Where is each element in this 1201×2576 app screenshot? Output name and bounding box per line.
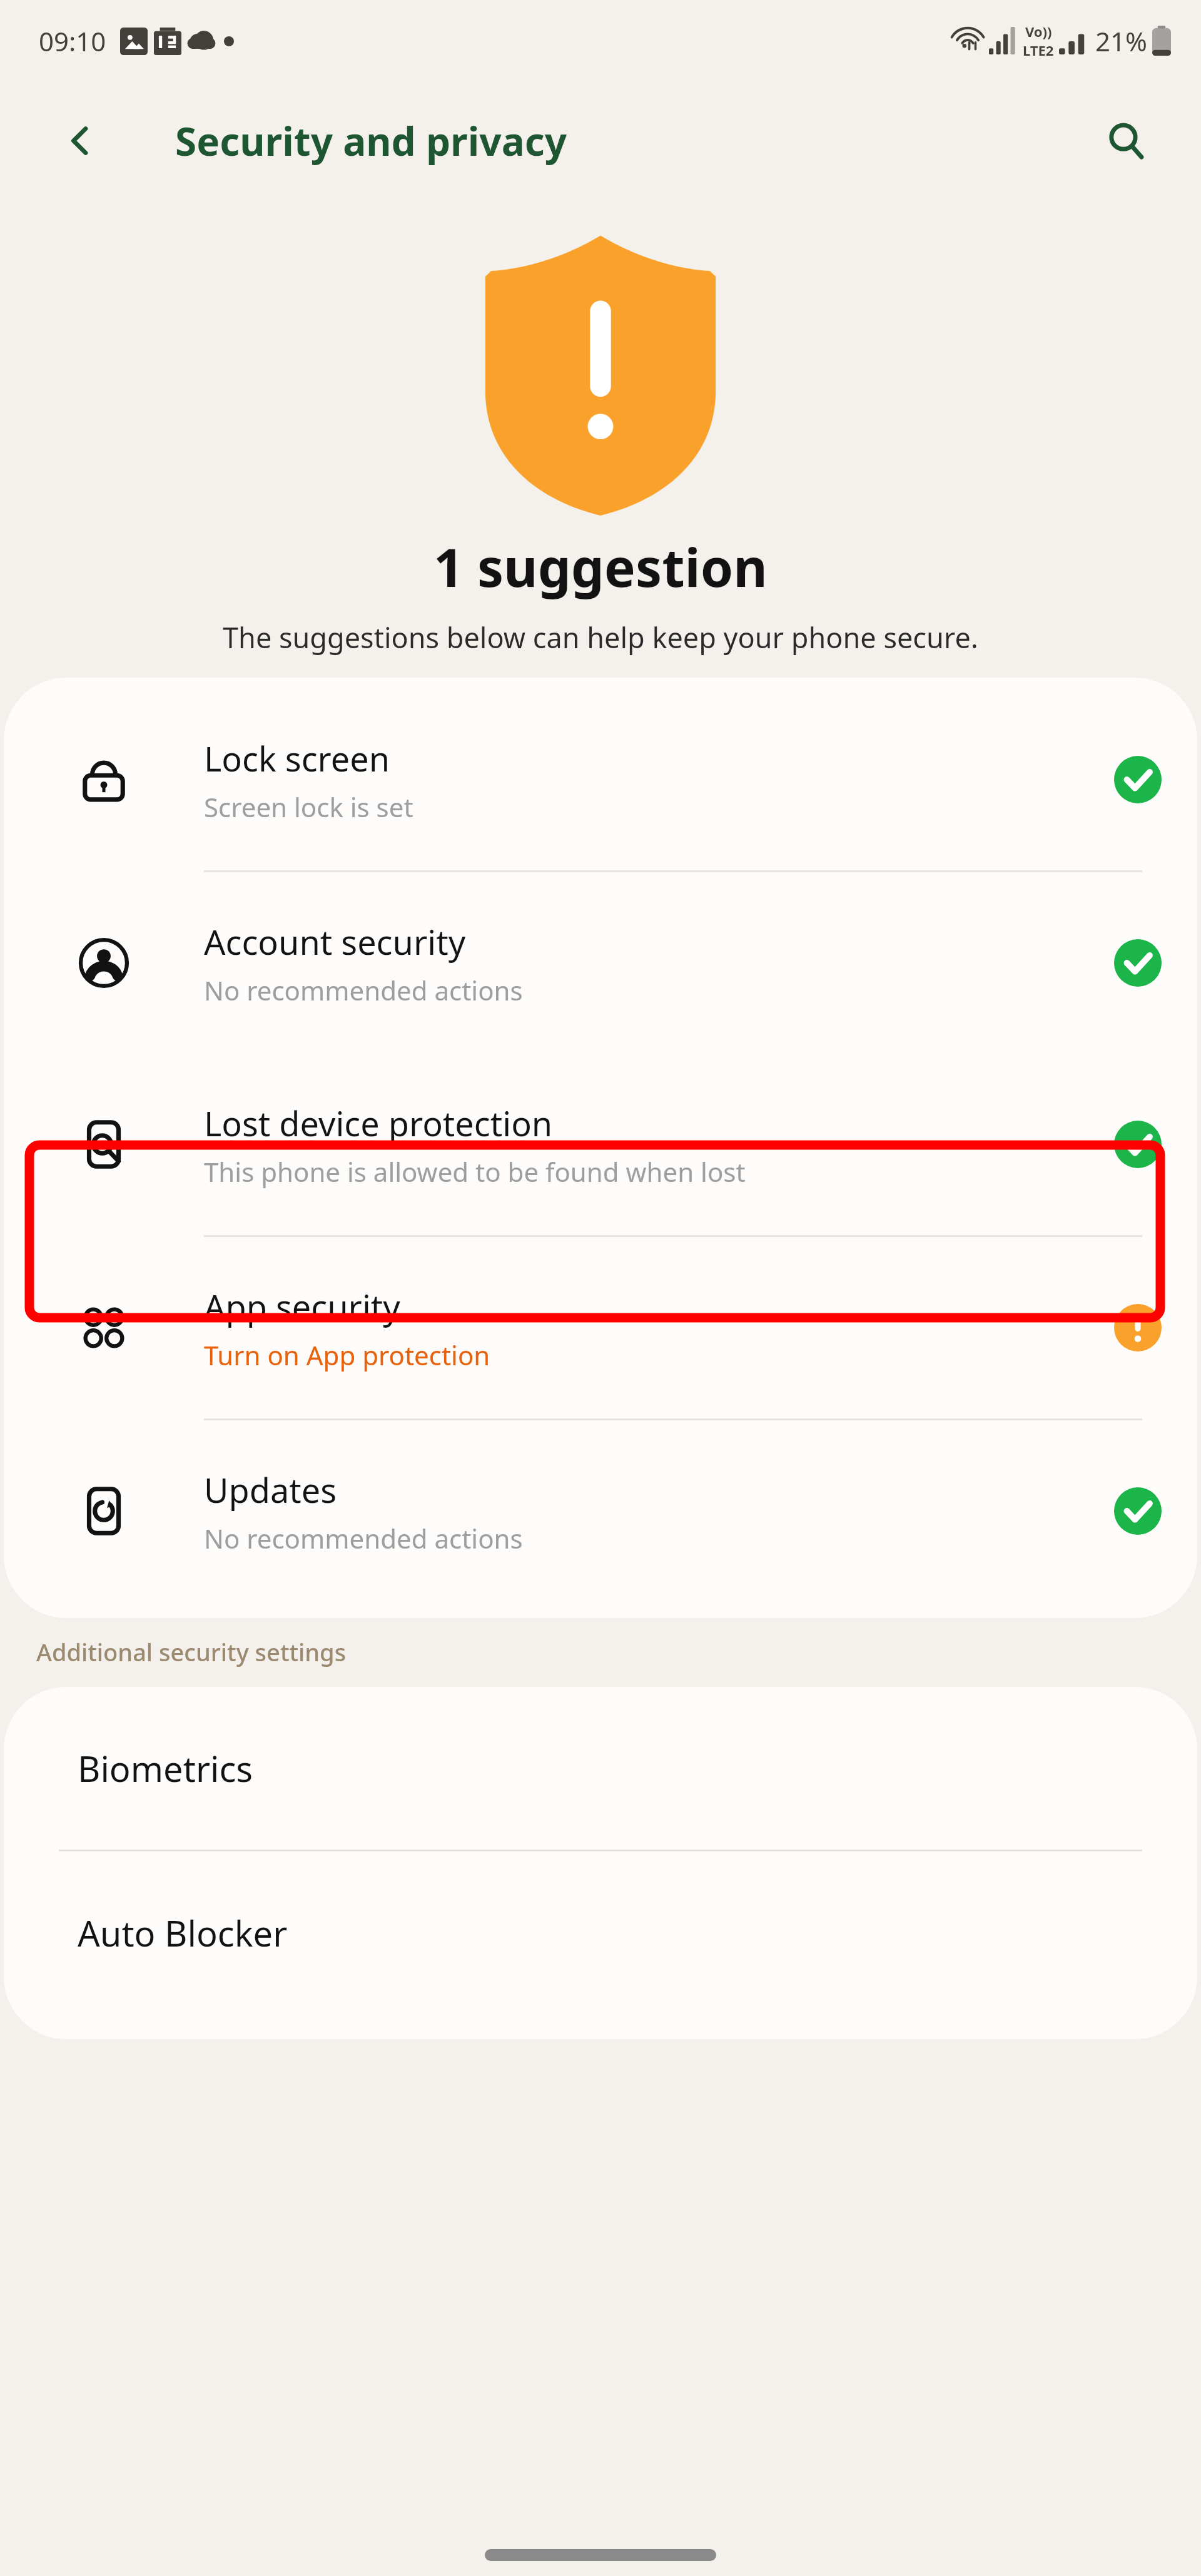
staticText: Vo)) [1025,22,1052,41]
button[interactable]: Auto Blocker [4,1851,1197,2014]
staticText: Additional security settings [36,1636,347,1668]
staticText: Lock screen [204,735,390,781]
button[interactable]: Account security [4,872,1197,1054]
staticText: Lost device protection [204,1100,553,1146]
staticText: This phone is allowed to be found when l… [204,1154,746,1189]
staticText: Screen lock is set [204,789,413,825]
button[interactable]: Lock screen [4,689,1197,870]
staticText: App security [204,1283,400,1330]
staticText: Auto Blocker [78,1909,288,1957]
button[interactable]: Search [1096,111,1156,171]
button[interactable]: App security [4,1237,1197,1418]
button[interactable]: Updates [4,1420,1197,1602]
staticText: Biometrics [78,1744,253,1792]
button[interactable]: Lost device protection [4,1054,1197,1235]
staticText: Turn on App protection [204,1337,490,1373]
staticText: Account security [204,919,466,965]
staticText: LTE2 [1023,41,1054,59]
staticText: No recommended actions [204,972,523,1008]
staticText: Updates [204,1467,337,1513]
staticText: Security and privacy [175,115,567,167]
button[interactable]: Biometrics [4,1687,1197,1850]
staticText: No recommended actions [204,1520,523,1556]
button[interactable]: Back [56,116,105,165]
staticText: 09:10 [39,23,106,59]
staticText: The suggestions below can help keep your… [223,618,978,656]
staticText: 21% [1095,23,1147,59]
staticText: 1 suggestion [433,531,768,602]
